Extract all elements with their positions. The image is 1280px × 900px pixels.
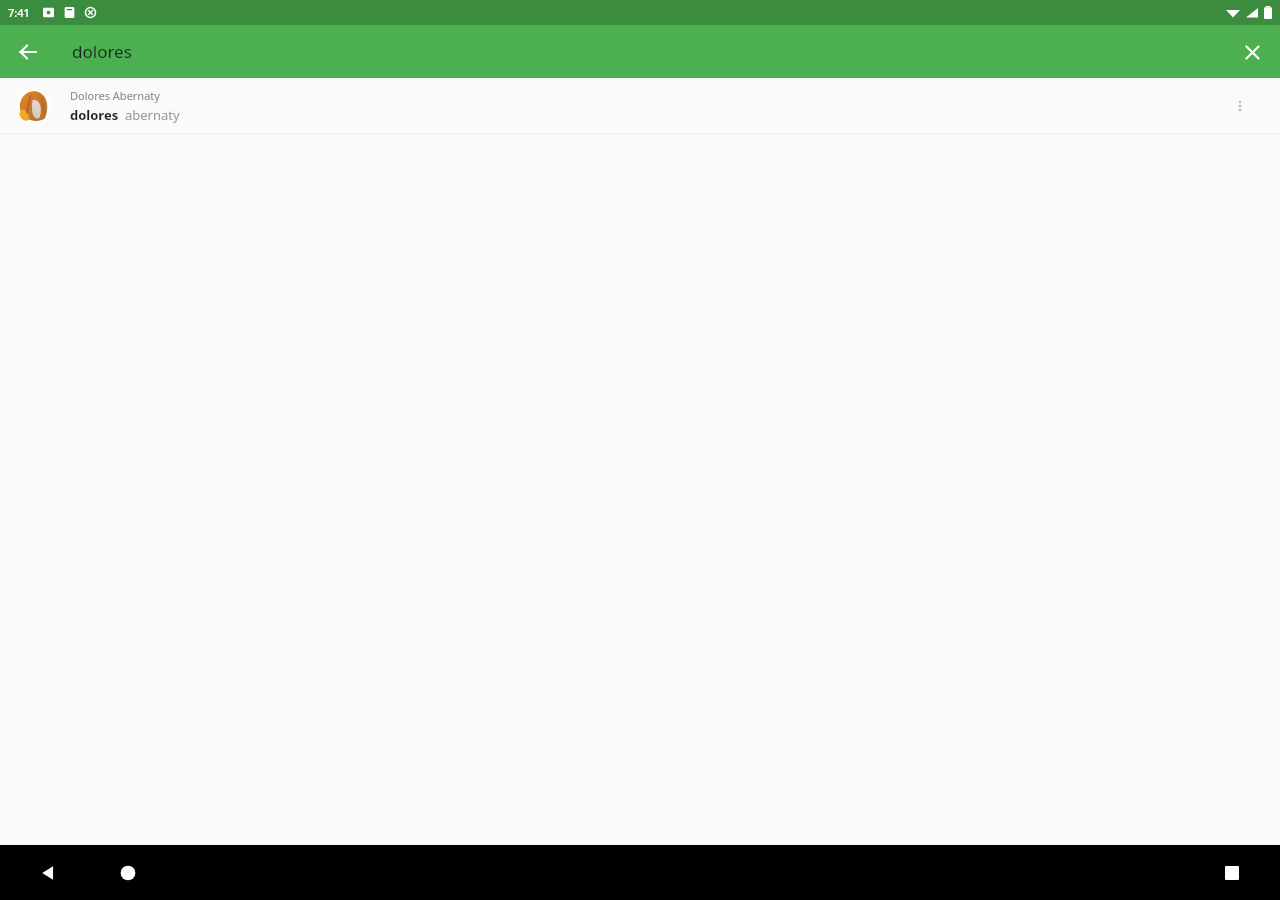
staticText: Dolores Abernaty [70, 88, 160, 103]
staticText: dolores abernaty [70, 106, 180, 124]
staticText: dolores [72, 40, 132, 63]
button[interactable]: More options [1216, 82, 1264, 130]
button[interactable]: Clear search [1232, 32, 1272, 72]
button[interactable]: Back [8, 32, 48, 72]
button[interactable]: Dolores Abernaty [0, 78, 1280, 133]
button[interactable]: Back [24, 849, 72, 897]
button[interactable]: Recent apps [1208, 849, 1256, 897]
button[interactable]: Home [104, 849, 152, 897]
staticText: 7:41 [8, 5, 30, 20]
